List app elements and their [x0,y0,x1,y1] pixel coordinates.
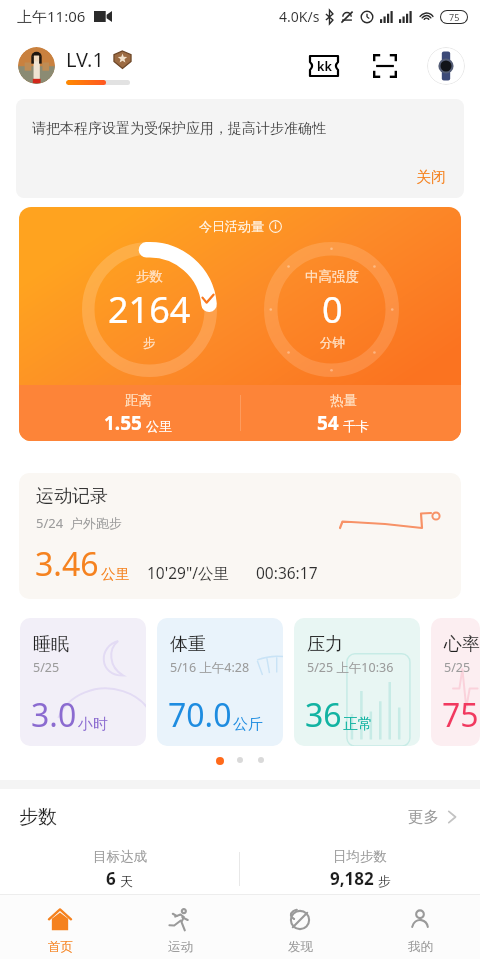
staticText: 5/24 户外跑步 [36,514,122,532]
staticText: 54 [317,410,339,436]
button[interactable]: 体重 [157,618,283,746]
staticText: 运动记录 [36,485,108,508]
staticText: 公里 [101,565,130,583]
staticText: 00:36:17 [256,562,318,583]
staticText: 9,182 [330,867,374,890]
staticText: 天 [120,873,133,889]
button[interactable]: 心率 [431,618,480,746]
button[interactable]: 运动记录 [19,473,461,599]
staticText: 3.0 [31,693,77,737]
staticText: LV.1 [66,46,104,73]
staticText: 更多 [408,807,439,827]
button[interactable]: 运动 [120,904,240,959]
staticText: 我的 [408,939,433,955]
staticText: 步数 [19,805,57,829]
button[interactable]: 今日活动量 [19,207,461,441]
staticText: 5/16 上午4:28 [170,659,250,676]
button[interactable]: Coupon [307,49,341,83]
button[interactable]: 关闭 [416,168,464,198]
staticText: 6 [106,867,116,890]
staticText: 发现 [288,939,313,955]
button[interactable]: My device [427,47,465,85]
button[interactable]: 发现 [240,904,360,959]
staticText: 小时 [78,715,108,734]
staticText: 上午11:06 [17,6,86,26]
staticText: 分钟 [320,335,345,351]
staticText: 公里 [146,418,172,434]
staticText: 10'29"/公里 [147,562,230,583]
button[interactable]: Scan [368,49,402,83]
staticText: 体重 [170,633,206,656]
button[interactable]: 请把本程序设置为受保护应用，提高计步准确性 [16,99,464,198]
staticText: 心率 [444,633,480,656]
staticText: kk [317,58,332,74]
staticText: 关闭 [416,168,446,187]
staticText: 5/25 [444,659,471,676]
button[interactable]: 首页 [0,904,120,959]
staticText: 5/25 [33,659,60,676]
staticText: 千卡 [343,418,369,434]
button[interactable]: 压力 [294,618,420,746]
staticText: 2164 [108,285,191,334]
staticText: 75 [449,11,460,23]
staticText: 步 [143,335,156,351]
staticText: 压力 [307,633,343,656]
staticText: 中高强度 [305,268,359,285]
staticText: 5/25 上午10:36 [307,659,394,676]
staticText: 今日活动量 [199,218,264,234]
staticText: 日均步数 [333,848,387,865]
staticText: 请把本程序设置为受保护应用，提高计步准确性 [32,120,326,138]
staticText: 距离 [125,392,152,409]
staticText: 70.0 [168,693,232,737]
staticText: 步数 [136,268,163,285]
staticText: 1.55 [104,410,142,436]
staticText: 3.46 [35,542,99,586]
staticText: 正常 [343,715,373,734]
staticText: 75 [442,693,479,737]
staticText: 运动 [168,939,193,955]
staticText: 目标达成 [93,848,147,865]
staticText: 4.0K/s [279,7,320,26]
button[interactable]: 步数 [0,789,480,844]
staticText: 睡眠 [33,633,69,656]
button[interactable]: Profile [18,47,55,84]
staticText: 首页 [48,939,73,955]
staticText: 步 [378,873,391,889]
staticText: 公斤 [233,715,263,734]
button[interactable]: 我的 [360,904,480,959]
staticText: 热量 [330,392,357,409]
staticText: 36 [305,693,342,737]
button[interactable]: 睡眠 [20,618,146,746]
staticText: 0 [322,285,343,334]
